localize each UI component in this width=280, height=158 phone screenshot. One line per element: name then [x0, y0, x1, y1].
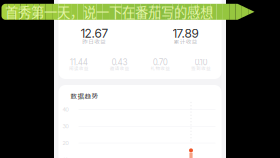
- staticText: 昨日收益: [82, 37, 106, 46]
- button[interactable]: 0.10: [181, 57, 222, 70]
- staticText: 11.44: [70, 57, 88, 67]
- staticText: 签到收益: [191, 65, 211, 72]
- staticText: 阅读收益: [69, 65, 89, 72]
- button[interactable]: 12.67: [48, 26, 140, 44]
- staticText: 0.43: [112, 57, 128, 67]
- staticText: 0.10: [195, 57, 208, 67]
- staticText: 17.89: [173, 26, 199, 40]
- button[interactable]: 0.70: [140, 57, 181, 70]
- button[interactable]: 11.44: [58, 57, 99, 70]
- button[interactable]: 17.89: [140, 26, 231, 44]
- staticText: 累计收益: [174, 37, 198, 46]
- staticText: 邀请收益: [110, 65, 130, 72]
- staticText: 20: [62, 140, 68, 146]
- button[interactable]: 数据趋势: [70, 91, 98, 100]
- staticText: 0.70: [153, 57, 168, 67]
- staticText: 40: [62, 106, 68, 113]
- staticText: 首秀第一天，说一下在番茄写的感想: [5, 2, 213, 21]
- staticText: 礼物收益: [150, 65, 170, 72]
- staticText: 12.67: [81, 26, 108, 40]
- button[interactable]: 0.43: [99, 57, 140, 70]
- staticText: 30: [62, 123, 68, 130]
- staticText: 数据趋势: [70, 91, 98, 100]
